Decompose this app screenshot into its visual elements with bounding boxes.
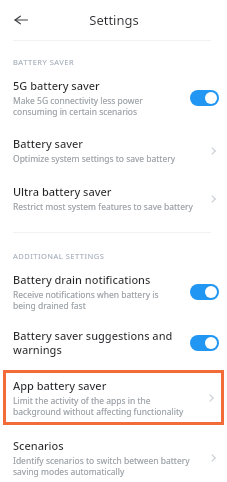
staticText: Battery saver <box>13 136 83 151</box>
button[interactable]: Scenarios <box>0 438 227 477</box>
staticText: Restrict most system features to save ba… <box>13 201 193 213</box>
button[interactable]: 5G battery saver <box>0 78 227 117</box>
button[interactable]: Ultra battery saver <box>0 184 227 213</box>
staticText: Battery saver suggestions and warnings <box>13 328 173 357</box>
staticText: Limit the activity of the apps in the ba… <box>13 395 184 417</box>
staticText: Identify scenarios to switch between bat… <box>13 455 190 477</box>
staticText: Optimize system settings to save battery <box>13 153 176 165</box>
staticText: BATTERY SAVER <box>13 57 75 67</box>
button[interactable]: App battery saver <box>3 370 224 425</box>
staticText: 5G battery saver <box>13 78 100 93</box>
staticText: Ultra battery saver <box>13 184 112 199</box>
button[interactable]: Toggle <box>190 284 219 300</box>
button[interactable]: Toggle <box>190 335 219 351</box>
staticText: Battery drain notifications <box>13 272 151 287</box>
button[interactable]: Battery saver <box>0 136 227 165</box>
staticText: ADDITIONAL SETTINGS <box>13 251 105 261</box>
staticText: Scenarios <box>13 438 64 453</box>
button[interactable]: Battery drain notifications <box>0 272 227 311</box>
staticText: Receive notifications when battery is be… <box>13 289 159 311</box>
button[interactable]: Toggle <box>190 90 219 106</box>
staticText: Settings <box>89 11 139 29</box>
button[interactable]: Battery saver suggestions and warnings <box>0 328 227 357</box>
staticText: Make 5G connectivity less power consumin… <box>13 95 143 117</box>
button[interactable]: Back <box>9 8 33 32</box>
staticText: App battery saver <box>13 378 107 393</box>
